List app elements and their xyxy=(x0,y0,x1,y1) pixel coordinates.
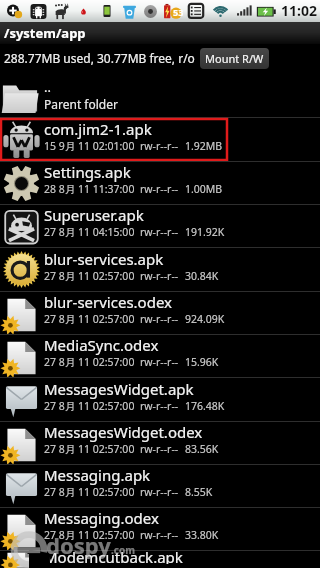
button[interactable]: Messaging.odex xyxy=(0,508,320,550)
staticText: 1.92MB xyxy=(185,139,223,153)
staticText: rw-r--r-- xyxy=(140,355,179,369)
button[interactable]: .. xyxy=(0,74,320,117)
staticText: 30.84K xyxy=(185,269,219,283)
staticText: rw-r--r-- xyxy=(140,399,179,413)
button[interactable]: Settings.apk xyxy=(0,162,320,204)
button[interactable]: MessagesWidget.odex xyxy=(0,422,320,464)
button[interactable]: Messaging.apk xyxy=(0,465,320,507)
staticText: 27 8月 11 02:57:00 xyxy=(44,399,135,413)
staticText: .com xyxy=(111,543,135,557)
staticText: 15.96K xyxy=(185,355,219,369)
staticText: MessagesWidget.odex xyxy=(44,422,203,442)
staticText: com.jim2-1.apk xyxy=(44,119,152,139)
staticText: 27 8月 11 02:57:00 xyxy=(44,485,135,499)
staticText: 27 8月 11 02:57:00 xyxy=(44,269,135,283)
button[interactable]: com.jim2-1.apk xyxy=(0,118,320,161)
staticText: 176.48K xyxy=(185,399,225,413)
staticText: blur-services.apk xyxy=(44,249,164,269)
button[interactable]: MessagesWidget.apk xyxy=(0,378,320,421)
staticText: 27 8月 11 02:57:00 xyxy=(44,528,135,542)
staticText: rw-r--r-- xyxy=(140,139,179,153)
staticText: MessagesWidget.apk xyxy=(44,379,194,399)
staticText: rw-r--r-- xyxy=(140,225,179,239)
staticText: rw-r--r-- xyxy=(140,312,179,326)
staticText: 8.55K xyxy=(185,485,213,499)
staticText: rw-r--r-- xyxy=(140,528,179,542)
staticText: 288.77MB used, 30.77MB free, r/o xyxy=(4,50,195,66)
staticText: Settings.apk xyxy=(44,162,131,182)
staticText: rw-r--r-- xyxy=(140,182,179,196)
button[interactable]: Modemcutback.apk xyxy=(0,551,320,568)
staticText: rw-r--r-- xyxy=(140,442,179,456)
staticText: 27 8月 11 04:15:00 xyxy=(44,225,135,239)
staticText: Messaging.odex xyxy=(44,508,159,528)
staticText: 924.09K xyxy=(185,312,225,326)
staticText: 15 9月 11 02:01:00 xyxy=(44,139,135,153)
staticText: 28 8月 11 11:37:00 xyxy=(44,182,135,196)
staticText: 27 8月 11 02:57:00 xyxy=(44,312,135,326)
staticText: Modemcutback.apk xyxy=(44,547,183,564)
staticText: 11:02 xyxy=(281,1,317,20)
button[interactable]: blur-services.odex xyxy=(0,292,320,334)
staticText: 1.00MB xyxy=(185,182,223,196)
staticText: Parent folder xyxy=(44,96,118,112)
staticText: rw-r--r-- xyxy=(140,485,179,499)
button[interactable]: Mount R/W xyxy=(200,48,269,69)
staticText: dospy xyxy=(46,530,111,560)
staticText: /system/app xyxy=(4,24,86,42)
staticText: 53 xyxy=(173,6,184,18)
staticText: 27 8月 11 02:57:00 xyxy=(44,442,135,456)
staticText: rw-r--r-- xyxy=(140,269,179,283)
staticText: .. xyxy=(44,78,51,96)
staticText: 191.92K xyxy=(185,225,225,239)
staticText: Messaging.apk xyxy=(44,465,151,485)
button[interactable]: MediaSync.odex xyxy=(0,335,320,377)
staticText: 27 8月 11 02:57:00 xyxy=(44,355,135,369)
staticText: 83.56K xyxy=(185,442,219,456)
staticText: blur-services.odex xyxy=(44,292,172,312)
staticText: 33.80K xyxy=(185,528,219,542)
staticText: Superuser.apk xyxy=(44,205,144,225)
staticText: MediaSync.odex xyxy=(44,335,159,355)
staticText: Mount R/W xyxy=(205,51,264,66)
button[interactable]: Superuser.apk xyxy=(0,205,320,247)
button[interactable]: blur-services.apk xyxy=(0,248,320,291)
